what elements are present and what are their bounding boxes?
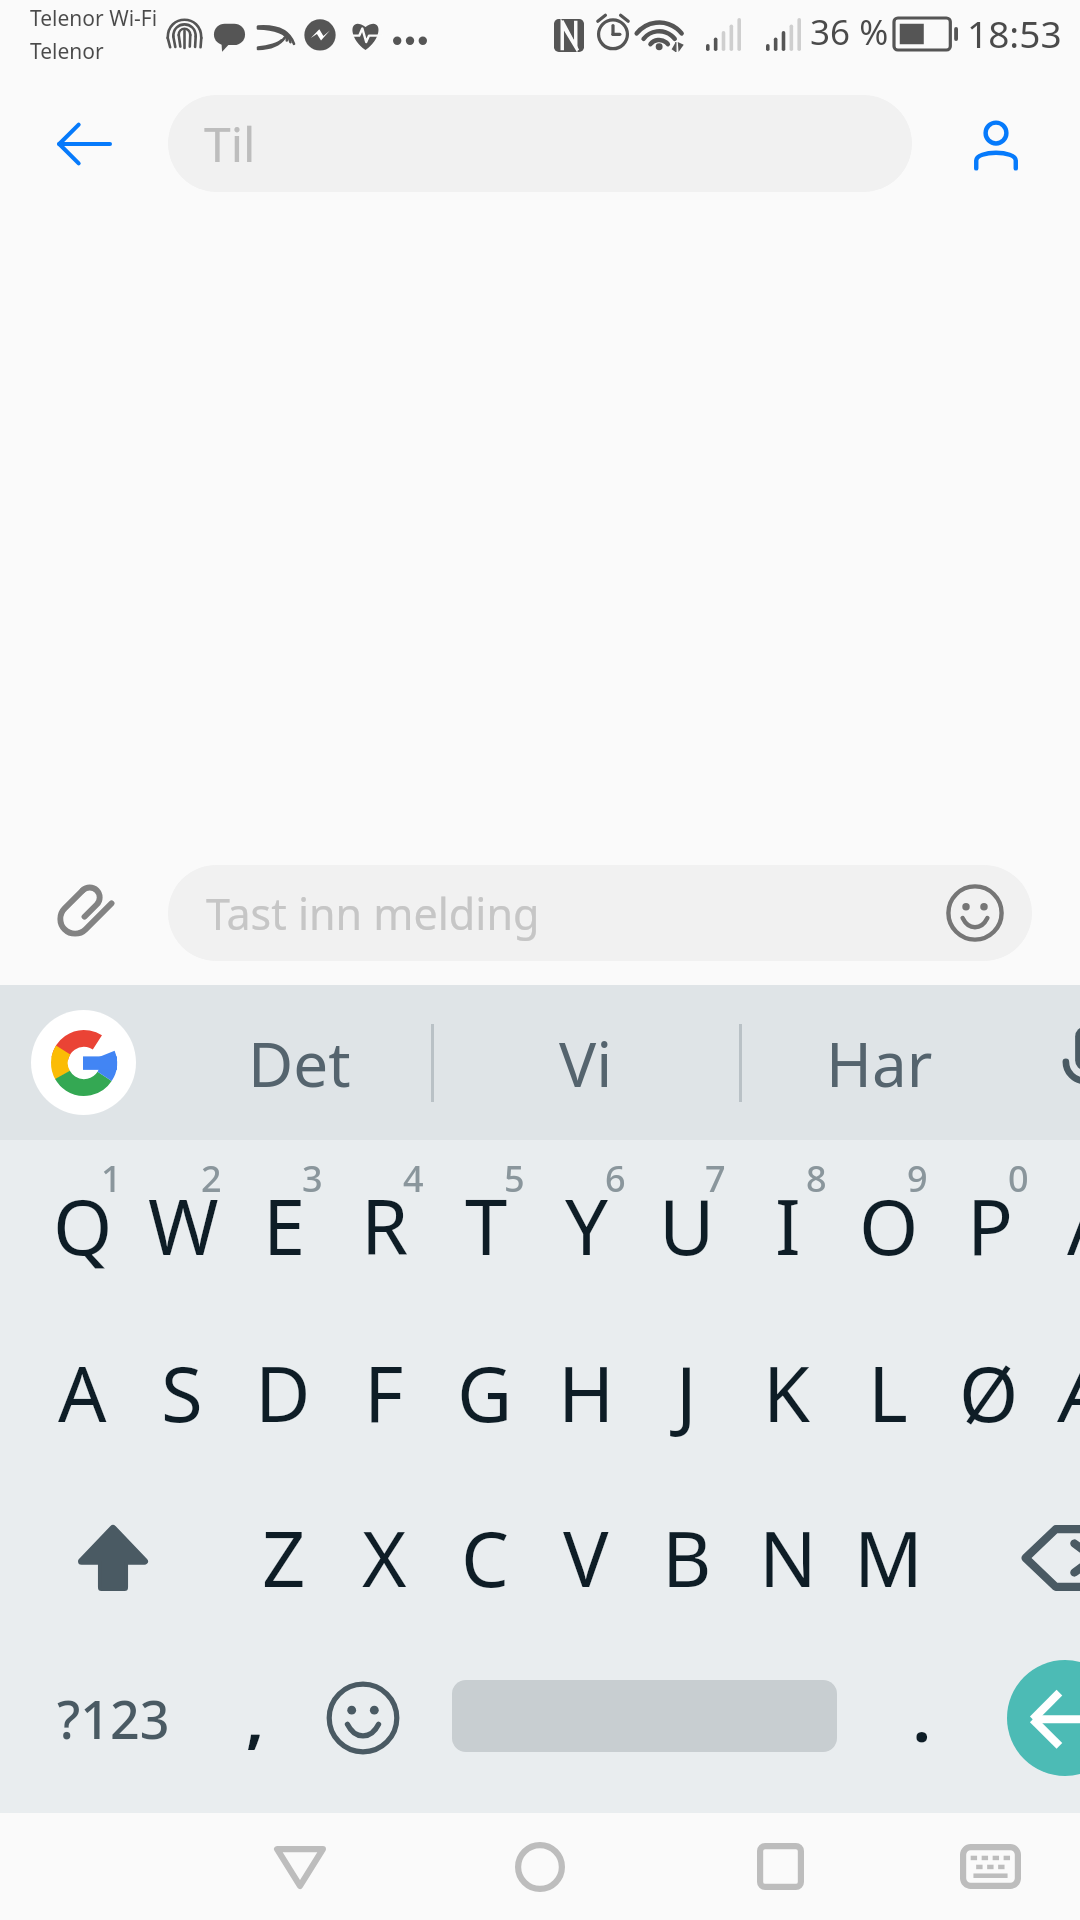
button[interactable]: C	[435, 1479, 535, 1637]
staticText: R	[361, 1174, 409, 1278]
button[interactable]: W	[133, 1147, 233, 1305]
staticText: E	[263, 1174, 306, 1278]
button[interactable]: X	[334, 1479, 434, 1637]
button[interactable]: Keyboard	[938, 1813, 1042, 1920]
staticText: P	[967, 1174, 1013, 1278]
button[interactable]: O	[839, 1147, 939, 1305]
staticText: V	[563, 1506, 609, 1610]
staticText: W	[148, 1174, 219, 1278]
button[interactable]: B	[637, 1479, 737, 1637]
button[interactable]: ,	[205, 1639, 305, 1797]
staticText: C	[461, 1506, 510, 1610]
staticText: 1	[101, 1154, 122, 1203]
staticText: 7	[705, 1154, 726, 1203]
staticText: X	[362, 1506, 407, 1610]
staticText: T	[465, 1174, 508, 1278]
button[interactable]: .	[872, 1639, 972, 1797]
button[interactable]: D	[233, 1314, 333, 1472]
button[interactable]: Q	[33, 1147, 133, 1305]
button[interactable]: Send	[1007, 1660, 1080, 1776]
staticText: 3	[302, 1154, 323, 1203]
staticText: Det	[248, 1021, 351, 1105]
staticText: 0	[1008, 1154, 1029, 1203]
button[interactable]: Google	[31, 1010, 136, 1115]
button[interactable]: N	[738, 1479, 838, 1637]
button[interactable]: G	[435, 1314, 535, 1472]
staticText: Ø	[959, 1341, 1019, 1445]
staticText: 2	[201, 1154, 222, 1203]
button[interactable]: Tast inn melding	[168, 865, 1032, 961]
button[interactable]: I	[738, 1147, 838, 1305]
staticText: 6	[605, 1154, 626, 1203]
button[interactable]: Contacts	[940, 88, 1052, 200]
button[interactable]: A	[32, 1314, 132, 1472]
staticText: 9	[907, 1154, 928, 1203]
button[interactable]: F	[334, 1314, 434, 1472]
staticText: Y	[565, 1174, 609, 1278]
button[interactable]: T	[436, 1147, 536, 1305]
button[interactable]: U	[637, 1147, 737, 1305]
staticText: Telenor Wi-Fi	[30, 4, 158, 33]
button[interactable]: K	[737, 1314, 837, 1472]
staticText: Z	[262, 1506, 306, 1610]
staticText: B	[662, 1506, 712, 1610]
staticText: I	[775, 1174, 801, 1278]
staticText: 4	[403, 1154, 424, 1203]
staticText: Æ	[1057, 1341, 1080, 1445]
button[interactable]: Æ	[1040, 1314, 1080, 1472]
staticText: 18:53	[967, 8, 1062, 58]
staticText: 5	[504, 1154, 525, 1203]
button[interactable]: Emoji	[935, 873, 1015, 953]
staticText: M	[854, 1506, 923, 1610]
staticText: .	[913, 1676, 931, 1760]
button[interactable]: Vi	[432, 985, 740, 1140]
button[interactable]: Attach	[25, 860, 145, 985]
button[interactable]: Til	[168, 95, 912, 192]
staticText: ,	[246, 1676, 264, 1760]
button[interactable]: J	[636, 1314, 736, 1472]
button[interactable]: Back	[248, 1813, 352, 1920]
staticText: Vi	[559, 1021, 613, 1105]
button[interactable]: Shift	[57, 1479, 169, 1637]
staticText: Telenor	[30, 37, 104, 66]
button[interactable]: Emoji	[313, 1639, 413, 1797]
staticText: G	[457, 1341, 513, 1445]
button[interactable]: Ø	[939, 1314, 1039, 1472]
staticText: U	[659, 1174, 715, 1278]
button[interactable]: ?123	[38, 1639, 188, 1797]
button[interactable]: Z	[234, 1479, 334, 1637]
button[interactable]: Å	[1041, 1147, 1080, 1305]
button[interactable]: S	[132, 1314, 232, 1472]
staticText: Har	[826, 1021, 933, 1105]
staticText: F	[364, 1341, 404, 1445]
staticText: ?123	[57, 1683, 170, 1754]
button[interactable]: L	[838, 1314, 938, 1472]
button[interactable]: Backspace	[1021, 1479, 1080, 1637]
button[interactable]: Back	[28, 88, 138, 200]
button[interactable]: M	[838, 1479, 938, 1637]
staticText: D	[255, 1341, 311, 1445]
button[interactable]: Recents	[728, 1813, 832, 1920]
staticText: 8	[806, 1154, 827, 1203]
staticText: L	[868, 1341, 908, 1445]
button[interactable]: E	[234, 1147, 334, 1305]
button[interactable]: H	[536, 1314, 636, 1472]
button[interactable]: Det	[167, 985, 432, 1140]
staticText: J	[676, 1341, 697, 1445]
button[interactable]: Y	[537, 1147, 637, 1305]
button[interactable]: Har	[740, 985, 1018, 1140]
staticText: Til	[204, 111, 256, 176]
button[interactable]: P	[940, 1147, 1040, 1305]
button[interactable]: Voice input	[1018, 985, 1080, 1140]
button[interactable]: R	[335, 1147, 435, 1305]
staticText: 36 %	[810, 8, 889, 56]
staticText: K	[763, 1341, 811, 1445]
staticText: Tast inn melding	[206, 884, 540, 943]
button[interactable]: Home	[488, 1813, 592, 1920]
staticText: A	[58, 1341, 107, 1445]
staticText: S	[161, 1341, 203, 1445]
staticText: H	[558, 1341, 615, 1445]
button[interactable]: V	[536, 1479, 636, 1637]
staticText: N	[759, 1506, 817, 1610]
